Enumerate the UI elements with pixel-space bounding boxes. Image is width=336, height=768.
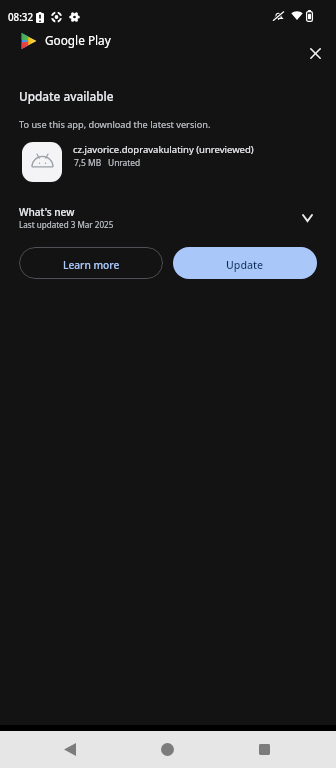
staticText: To use this app, download the latest ver… — [19, 118, 211, 131]
button[interactable]: Close — [301, 39, 329, 67]
button[interactable]: What's new — [0, 200, 336, 232]
button[interactable]: Home — [153, 735, 181, 763]
staticText: 08:32 — [8, 11, 34, 24]
staticText: 7,5 MB — [74, 157, 102, 168]
button[interactable]: Back — [56, 735, 84, 763]
staticText: cz.javorice.dopravakulatiny (unreviewed) — [73, 143, 254, 156]
staticText: What's new — [19, 205, 75, 219]
staticText: Last updated 3 Mar 2025 — [19, 219, 114, 230]
staticText: Update — [226, 258, 264, 272]
button[interactable]: Update — [173, 247, 317, 279]
button[interactable]: Recent apps — [250, 735, 278, 763]
button[interactable]: Learn more — [19, 247, 163, 279]
staticText: Update available — [19, 88, 114, 104]
staticText: Learn more — [63, 258, 120, 272]
staticText: Unrated — [108, 157, 141, 168]
staticText: Google Play — [45, 32, 111, 48]
